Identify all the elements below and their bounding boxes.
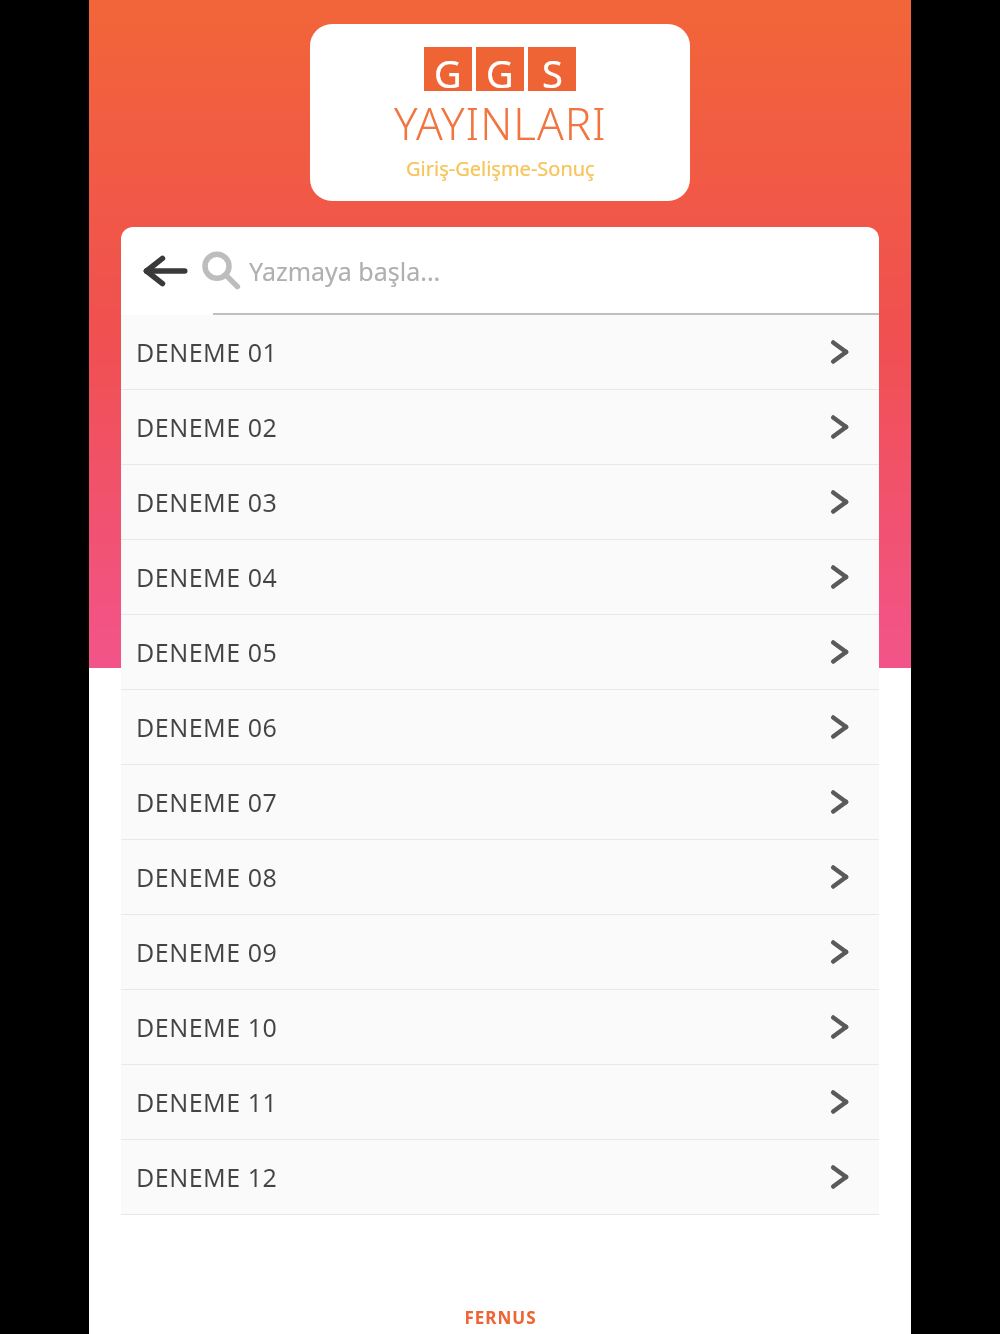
button[interactable]: DENEME 03: [121, 465, 879, 540]
staticText: DENEME 08: [136, 860, 823, 894]
staticText: Yazmaya başla...: [249, 254, 441, 288]
staticText: DENEME 02: [136, 410, 823, 444]
button[interactable]: DENEME 12: [121, 1140, 879, 1215]
button[interactable]: DENEME 11: [121, 1065, 879, 1140]
staticText: DENEME 12: [136, 1160, 823, 1194]
button[interactable]: DENEME 06: [121, 690, 879, 765]
staticText: G: [486, 47, 514, 91]
button[interactable]: DENEME 10: [121, 990, 879, 1065]
button[interactable]: DENEME 05: [121, 615, 879, 690]
staticText: YAYINLARI: [394, 93, 607, 153]
staticText: FERNUS: [464, 1306, 537, 1329]
staticText: DENEME 10: [136, 1010, 823, 1044]
button[interactable]: DENEME 09: [121, 915, 879, 990]
button[interactable]: DENEME 04: [121, 540, 879, 615]
button[interactable]: DENEME 02: [121, 390, 879, 465]
staticText: DENEME 03: [136, 485, 823, 519]
staticText: Giriş-Gelişme-Sonuç: [406, 155, 595, 182]
staticText: DENEME 04: [136, 560, 823, 594]
button[interactable]: Back: [129, 235, 201, 307]
staticText: DENEME 05: [136, 635, 823, 669]
staticText: G: [434, 47, 462, 91]
staticText: DENEME 09: [136, 935, 823, 969]
staticText: DENEME 06: [136, 710, 823, 744]
staticText: DENEME 07: [136, 785, 823, 819]
staticText: S: [542, 47, 563, 91]
staticText: DENEME 11: [136, 1085, 823, 1119]
staticText: DENEME 01: [136, 335, 823, 369]
button[interactable]: DENEME 07: [121, 765, 879, 840]
button[interactable]: DENEME 01: [121, 315, 879, 390]
button[interactable]: DENEME 08: [121, 840, 879, 915]
